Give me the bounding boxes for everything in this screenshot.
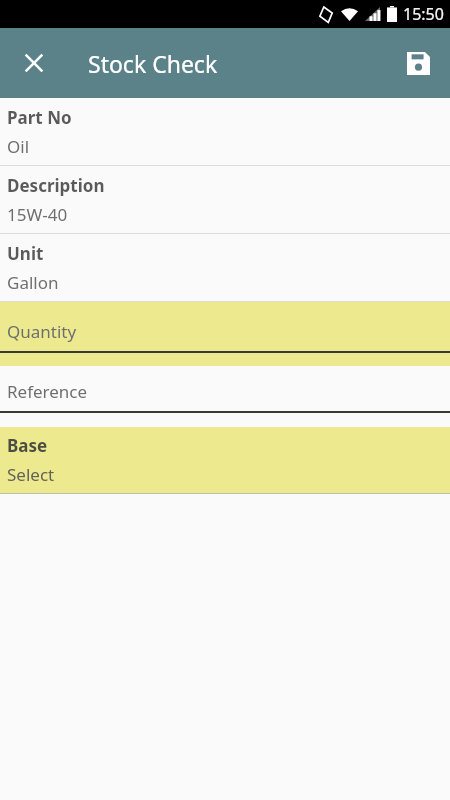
staticText: Base — [7, 434, 48, 457]
staticText: Gallon — [7, 271, 59, 294]
button[interactable]: Unit — [0, 234, 450, 302]
staticText: Oil — [7, 135, 30, 158]
staticText: Select — [7, 463, 55, 486]
button[interactable]: Description — [0, 166, 450, 234]
staticText: Stock Check — [88, 48, 218, 79]
staticText: Unit — [7, 242, 44, 265]
staticText: Part No — [7, 106, 72, 129]
button[interactable]: Close — [10, 39, 58, 87]
button[interactable]: Part No — [0, 98, 450, 166]
button[interactable]: Save — [394, 39, 442, 87]
button[interactable]: Reference — [0, 366, 450, 427]
staticText: Quantity — [7, 320, 77, 343]
staticText: 15:50 — [403, 3, 444, 25]
staticText: Reference — [7, 380, 88, 403]
button[interactable]: Base — [0, 427, 450, 494]
button[interactable]: Quantity — [0, 302, 450, 366]
staticText: 15W-40 — [7, 203, 68, 226]
staticText: Description — [7, 174, 105, 197]
